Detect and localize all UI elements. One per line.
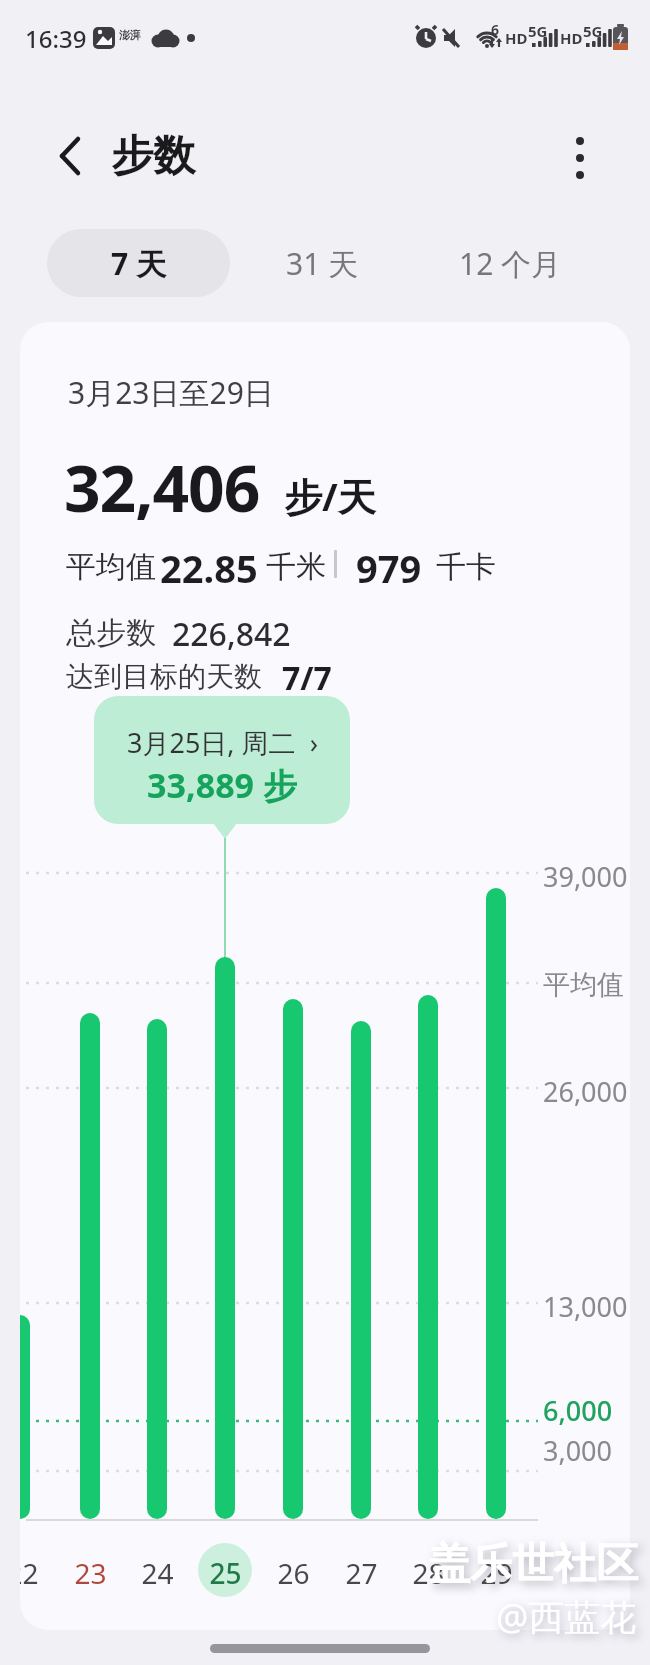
staticText: 平均值: [66, 548, 156, 586]
staticText: 3月25日, 周二 ›: [127, 724, 318, 761]
staticText: 12 个月: [459, 243, 562, 284]
staticText: 29: [480, 1554, 513, 1592]
staticText: 澎湃: [119, 28, 141, 42]
staticText: 5G: [528, 21, 548, 41]
button[interactable]: 12 个月: [437, 229, 583, 297]
staticText: 13,000: [543, 1288, 628, 1325]
staticText: 6: [491, 20, 500, 39]
staticText: 16:39: [25, 22, 87, 55]
staticText: 33,889 步: [147, 762, 297, 808]
staticText: 5G: [583, 21, 603, 41]
staticText: HD: [505, 28, 528, 48]
staticText: 26,000: [543, 1073, 628, 1110]
staticText: 3月23日至29日: [68, 372, 274, 413]
staticText: 23: [74, 1554, 107, 1592]
staticText: 22: [20, 1554, 39, 1592]
staticText: 达到目标的天数: [66, 659, 262, 694]
staticText: 226,842: [172, 612, 291, 656]
staticText: 千米: [266, 548, 326, 586]
button[interactable]: 7 天: [47, 229, 230, 297]
staticText: 盖乐世社区: [428, 1538, 638, 1591]
staticText: 26: [277, 1554, 310, 1592]
staticText: 28: [412, 1554, 445, 1592]
staticText: 27: [345, 1554, 378, 1592]
staticText: @西蓝花: [496, 1592, 637, 1641]
staticText: 22.85: [160, 542, 258, 594]
staticText: 32,406: [64, 444, 260, 531]
staticText: 6,000: [543, 1392, 613, 1429]
button[interactable]: 31 天: [252, 229, 392, 297]
staticText: 总步数: [66, 614, 156, 652]
staticText: 步数: [111, 130, 195, 183]
button[interactable]: 3月25日, 周二 ›: [94, 696, 350, 824]
staticText: 31 天: [286, 243, 359, 284]
button[interactable]: [40, 128, 96, 184]
staticText: 步/天: [284, 470, 376, 522]
staticText: 24: [141, 1554, 174, 1592]
staticText: 25: [209, 1554, 242, 1592]
staticText: 7 天: [111, 243, 166, 284]
staticText: 979: [356, 542, 422, 594]
staticText: 平均值: [543, 968, 624, 1002]
staticText: HD: [560, 28, 583, 48]
staticText: 千卡: [436, 548, 496, 586]
staticText: 39,000: [543, 858, 628, 895]
staticText: 7/7: [282, 656, 332, 700]
button[interactable]: [556, 128, 604, 184]
staticText: 3,000: [543, 1432, 613, 1469]
